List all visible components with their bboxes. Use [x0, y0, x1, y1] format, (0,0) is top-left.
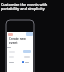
staticText: Create new event: [9, 37, 33, 45]
staticText: Customize the events with portability an…: [1, 2, 64, 11]
